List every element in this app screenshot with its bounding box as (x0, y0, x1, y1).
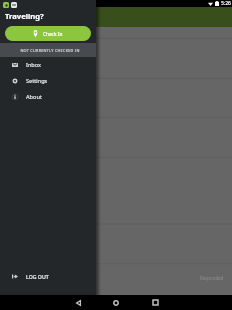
staticText: Check In (43, 31, 63, 37)
staticText: 5:26 (221, 0, 231, 7)
staticText: Traveling? (5, 11, 44, 21)
button[interactable]: LOG OUT (0, 268, 96, 284)
button[interactable]: Inbox (0, 57, 96, 73)
staticText: About (26, 93, 42, 101)
button[interactable]: Check In (5, 26, 91, 41)
button[interactable]: Back (68, 295, 88, 310)
button[interactable]: Recent apps (145, 295, 165, 310)
staticText: LOG OUT (26, 273, 49, 280)
staticText: Inbox (26, 61, 42, 69)
staticText: NOT CURRENTLY CHECKED IN (20, 48, 80, 53)
staticText: Responded (200, 275, 224, 281)
button[interactable]: Settings (0, 73, 96, 89)
button[interactable]: Home (106, 295, 126, 310)
staticText: Settings (26, 77, 48, 85)
button[interactable]: About (0, 89, 96, 105)
